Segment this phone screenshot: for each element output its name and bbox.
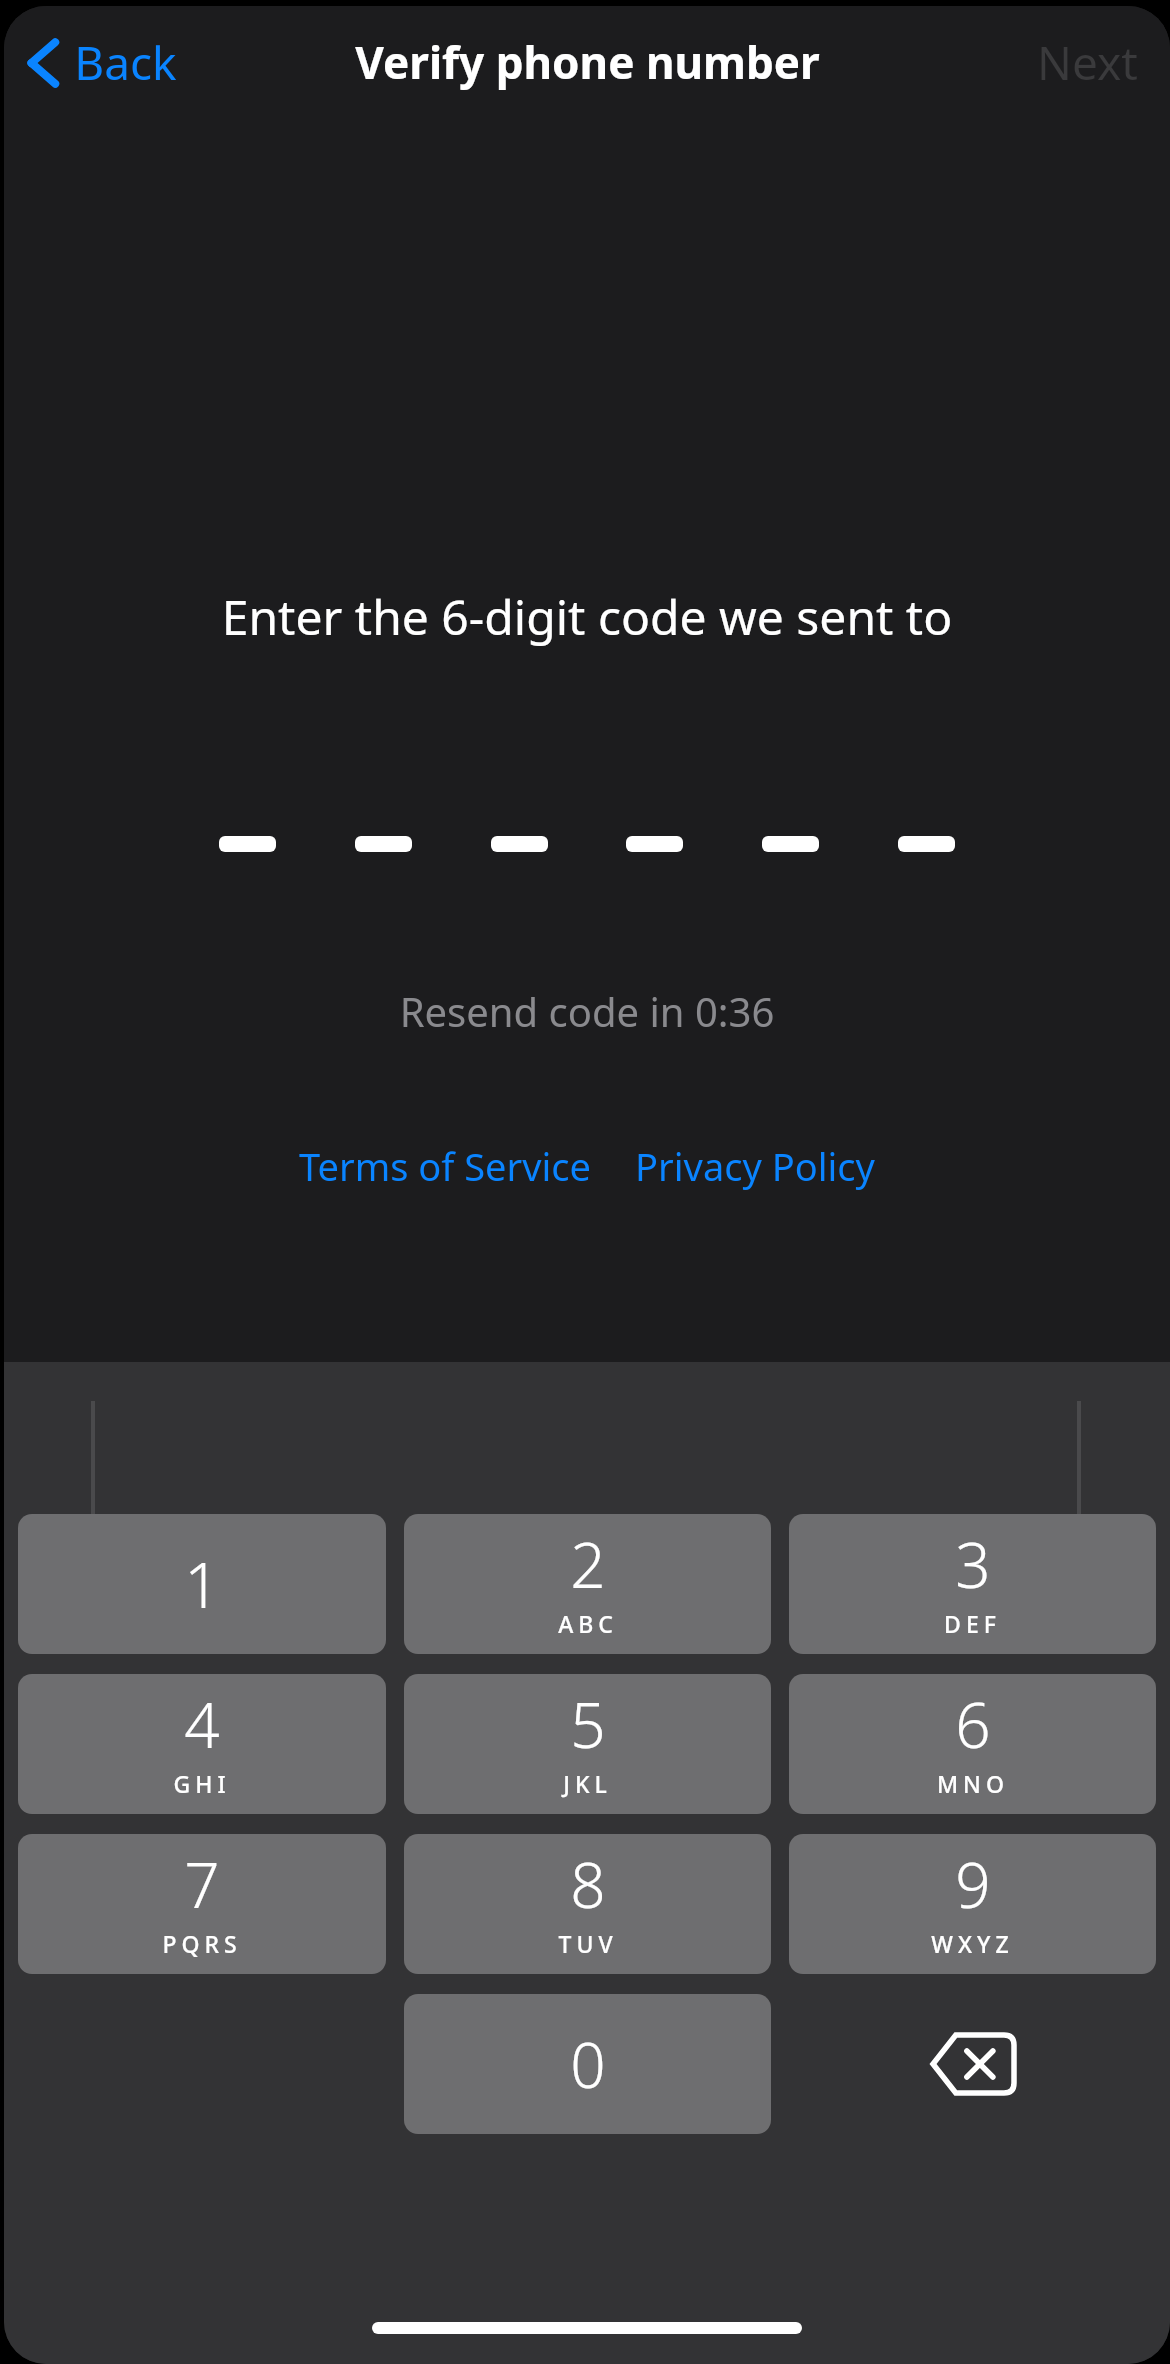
staticText: PQRS (162, 1928, 242, 1959)
staticText: 4 (184, 1682, 220, 1766)
staticText: 6 (955, 1682, 991, 1766)
staticText: Terms of Service (299, 1140, 591, 1192)
staticText: 7 (184, 1842, 220, 1926)
staticText: Back (74, 31, 177, 94)
staticText: Privacy Policy (635, 1140, 875, 1192)
staticText: DEF (944, 1608, 1001, 1639)
button[interactable]: 9 (789, 1834, 1156, 1974)
button[interactable]: 8 (404, 1834, 771, 1974)
button[interactable]: 7 (18, 1834, 386, 1974)
staticText: 0 (570, 2022, 606, 2106)
staticText: Next (1037, 31, 1138, 94)
staticText: MNO (937, 1768, 1009, 1799)
staticText: 3 (955, 1522, 991, 1606)
button[interactable]: 5 (404, 1674, 771, 1814)
button[interactable]: 0 (404, 1994, 771, 2134)
staticText: 2 (570, 1522, 606, 1606)
staticText: 5 (570, 1682, 606, 1766)
button[interactable]: Delete (789, 1994, 1156, 2134)
staticText: Enter the 6-digit code we sent to (4, 584, 1170, 649)
button[interactable]: 2 (404, 1514, 771, 1654)
staticText: Verify phone number (355, 32, 820, 92)
staticText: 1 (184, 1542, 220, 1626)
staticText: GHI (173, 1768, 231, 1799)
staticText: TUV (558, 1928, 618, 1959)
button[interactable]: Terms of Service (295, 1134, 595, 1198)
button[interactable]: 3 (789, 1514, 1156, 1654)
button[interactable]: Privacy Policy (631, 1134, 879, 1198)
staticText: 9 (955, 1842, 991, 1926)
staticText: WXYZ (931, 1928, 1014, 1959)
button[interactable]: Back (14, 21, 195, 104)
staticText: ABC (558, 1608, 618, 1639)
staticText: 8 (570, 1842, 606, 1926)
button[interactable]: 1 (18, 1514, 386, 1654)
staticText: JKL (563, 1768, 612, 1799)
button[interactable]: Next (1021, 19, 1154, 106)
button[interactable]: 6 (789, 1674, 1156, 1814)
staticText: Resend code in 0:36 (4, 984, 1170, 1038)
button[interactable]: 4 (18, 1674, 386, 1814)
